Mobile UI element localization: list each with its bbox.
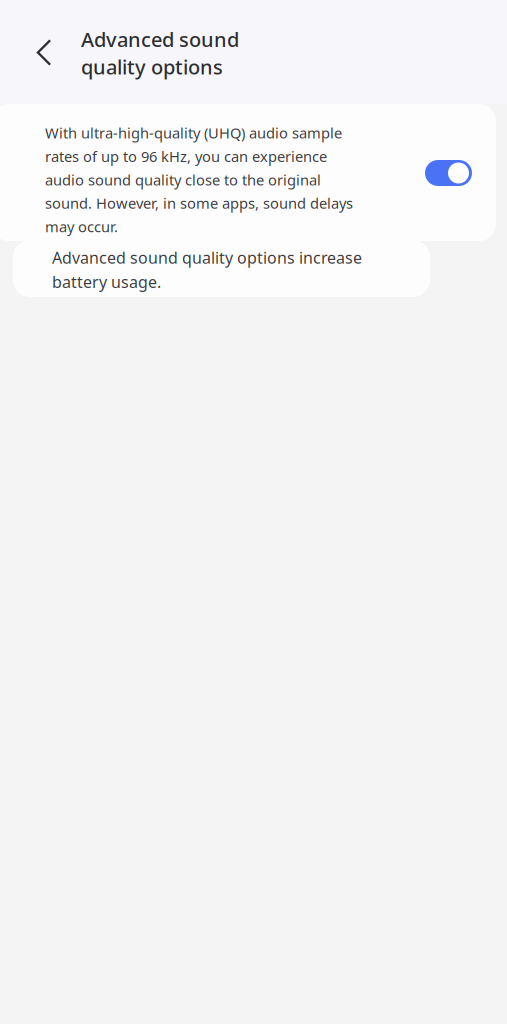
staticText: With ultra-high-quality (UHQ) audio samp… [45,123,353,236]
button[interactable]: Advanced sound quality options, on [425,104,496,186]
button[interactable]: Back [22,14,66,84]
staticText: Advanced sound quality options [81,26,239,80]
staticText: Advanced sound quality options increase … [52,247,362,292]
